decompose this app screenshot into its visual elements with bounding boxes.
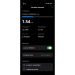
staticText: 9:41 [48, 24, 75, 54]
button[interactable]: Back [20, 59, 63, 75]
